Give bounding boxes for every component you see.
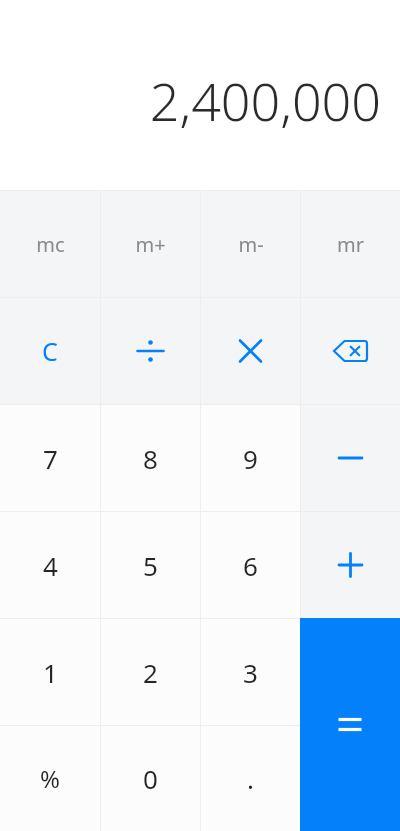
- button[interactable]: 4: [0, 512, 100, 618]
- button[interactable]: Multiply: [201, 298, 300, 404]
- staticText: 2,400,000: [149, 65, 381, 136]
- staticText: mc: [36, 231, 65, 258]
- button[interactable]: mr: [301, 191, 400, 297]
- button[interactable]: Divide: [101, 298, 200, 404]
- button[interactable]: m-: [201, 191, 300, 297]
- staticText: 2: [143, 655, 158, 690]
- button[interactable]: 0: [101, 726, 200, 831]
- button[interactable]: 1: [0, 619, 100, 725]
- staticText: 1: [43, 655, 58, 690]
- button[interactable]: C: [0, 298, 100, 404]
- button[interactable]: Minus: [301, 405, 400, 511]
- button[interactable]: 6: [201, 512, 300, 618]
- button[interactable]: 5: [101, 512, 200, 618]
- staticText: .: [247, 761, 254, 796]
- button[interactable]: 8: [101, 405, 200, 511]
- button[interactable]: Backspace: [301, 298, 400, 404]
- staticText: 5: [143, 548, 158, 583]
- button[interactable]: Equals: [300, 618, 400, 831]
- staticText: 3: [243, 655, 258, 690]
- button[interactable]: 7: [0, 405, 100, 511]
- staticText: m-: [238, 231, 264, 258]
- button[interactable]: 2: [101, 619, 200, 725]
- staticText: 9: [243, 441, 258, 476]
- staticText: 8: [143, 441, 158, 476]
- staticText: 7: [43, 441, 58, 476]
- button[interactable]: 3: [201, 619, 300, 725]
- staticText: mr: [337, 231, 364, 258]
- button[interactable]: mc: [0, 191, 100, 297]
- button[interactable]: %: [0, 726, 100, 831]
- button[interactable]: 9: [201, 405, 300, 511]
- button[interactable]: .: [201, 726, 300, 831]
- staticText: 6: [243, 548, 258, 583]
- staticText: 4: [43, 548, 58, 583]
- staticText: %: [40, 762, 60, 795]
- staticText: 0: [143, 761, 158, 796]
- button[interactable]: m+: [101, 191, 200, 297]
- button[interactable]: Plus: [301, 512, 400, 618]
- staticText: C: [42, 334, 58, 368]
- staticText: m+: [135, 231, 166, 258]
